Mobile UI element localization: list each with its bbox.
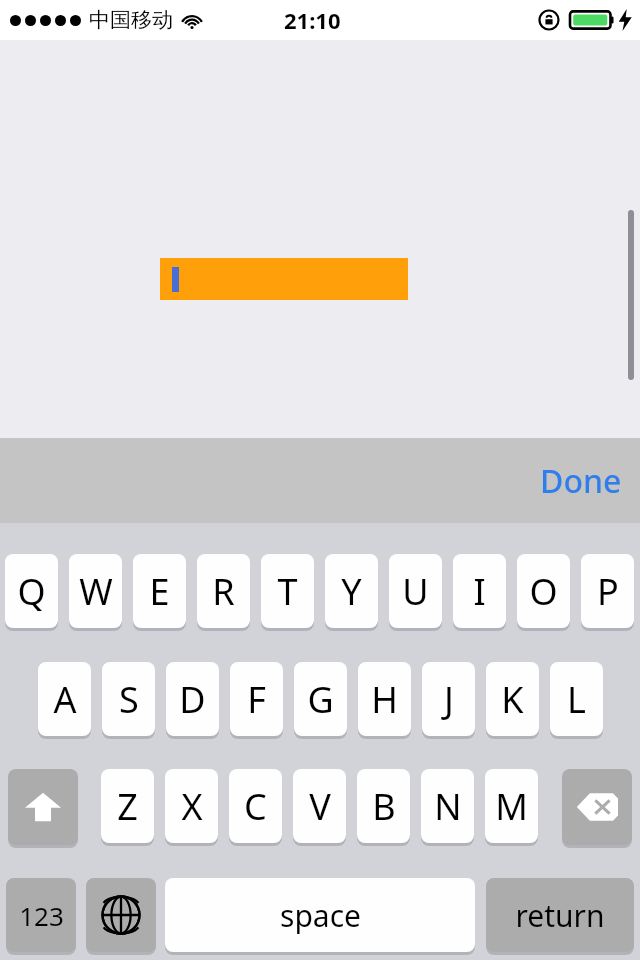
button[interactable]: M: [485, 769, 538, 843]
staticText: Done: [540, 459, 622, 503]
button[interactable]: Y: [325, 554, 378, 628]
button[interactable]: U: [389, 554, 442, 628]
button[interactable]: A: [38, 662, 91, 736]
button[interactable]: S: [102, 662, 155, 736]
staticText: G: [307, 675, 334, 724]
staticText: W: [79, 567, 113, 616]
staticText: T: [277, 567, 298, 616]
button[interactable]: J: [422, 662, 475, 736]
staticText: S: [119, 675, 139, 724]
staticText: V: [309, 782, 331, 831]
button[interactable]: G: [294, 662, 347, 736]
staticText: D: [179, 675, 206, 724]
staticText: A: [53, 675, 77, 724]
staticText: I: [473, 567, 486, 616]
button[interactable]: E: [133, 554, 186, 628]
button[interactable]: Switch keyboard: [86, 878, 156, 952]
button[interactable]: W: [69, 554, 122, 628]
staticText: Q: [17, 567, 46, 616]
staticText: X: [181, 782, 203, 831]
button[interactable]: [160, 258, 408, 300]
button[interactable]: Done: [540, 459, 622, 503]
button[interactable]: P: [581, 554, 634, 628]
button[interactable]: N: [421, 769, 474, 843]
button[interactable]: C: [229, 769, 282, 843]
button[interactable]: H: [358, 662, 411, 736]
staticText: U: [402, 567, 429, 616]
staticText: return: [515, 895, 605, 936]
staticText: M: [495, 782, 528, 831]
staticText: L: [567, 675, 586, 724]
button[interactable]: D: [166, 662, 219, 736]
staticText: H: [371, 675, 398, 724]
button[interactable]: V: [293, 769, 346, 843]
staticText: N: [434, 782, 462, 831]
button[interactable]: Z: [101, 769, 154, 843]
button[interactable]: O: [517, 554, 570, 628]
button[interactable]: Q: [5, 554, 58, 628]
staticText: 中国移动: [89, 7, 173, 33]
button[interactable]: R: [197, 554, 250, 628]
button[interactable]: return: [486, 878, 634, 952]
staticText: K: [501, 675, 524, 724]
staticText: C: [244, 782, 267, 831]
staticText: B: [372, 782, 396, 831]
staticText: O: [529, 567, 558, 616]
button[interactable]: X: [165, 769, 218, 843]
button[interactable]: I: [453, 554, 506, 628]
button[interactable]: 123: [6, 878, 76, 952]
staticText: 123: [19, 898, 64, 933]
button[interactable]: space: [165, 878, 475, 952]
staticText: J: [444, 675, 454, 724]
staticText: P: [597, 567, 619, 616]
button[interactable]: B: [357, 769, 410, 843]
staticText: 21:10: [284, 5, 341, 35]
button[interactable]: Shift: [8, 769, 78, 845]
staticText: R: [212, 567, 235, 616]
button[interactable]: K: [486, 662, 539, 736]
staticText: Z: [117, 782, 138, 831]
staticText: space: [280, 895, 361, 936]
staticText: E: [149, 567, 170, 616]
staticText: Y: [341, 567, 362, 616]
button[interactable]: F: [230, 662, 283, 736]
button[interactable]: T: [261, 554, 314, 628]
button[interactable]: Backspace: [562, 769, 632, 845]
button[interactable]: L: [550, 662, 603, 736]
staticText: F: [247, 675, 266, 724]
